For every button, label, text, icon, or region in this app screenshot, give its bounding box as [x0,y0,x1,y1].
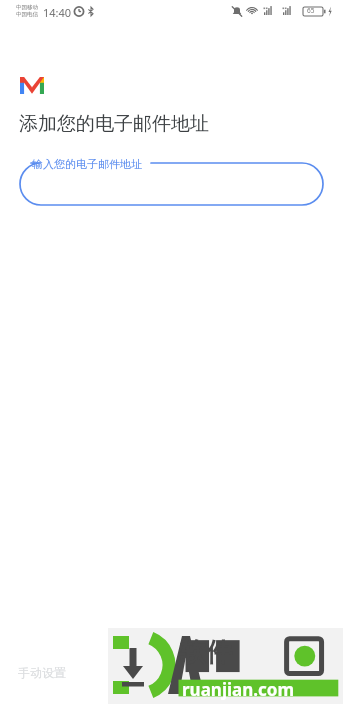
staticText: 中国电信 [16,11,38,18]
staticText: 添加您的电子邮件地址 [19,112,209,136]
staticText: 输入您的电子邮件地址 [32,157,142,171]
staticText: 手动设置 [18,665,66,680]
staticText: 14:40 [43,5,72,20]
other: Gmail [20,77,44,94]
staticText: 65 [307,6,315,15]
button[interactable]: 输入您的电子邮件地址 [20,163,323,205]
staticText: ruanjian.com [182,678,295,701]
staticText: 软件 [180,636,232,669]
staticText: 中国移动 [16,4,38,11]
button[interactable]: 手动设置 [10,659,74,686]
